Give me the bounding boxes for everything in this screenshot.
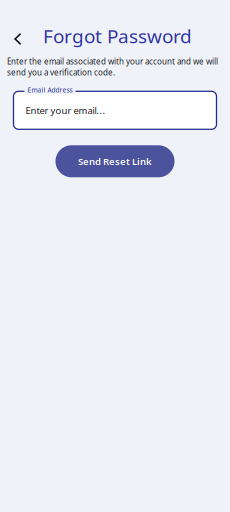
staticText: Forgot Password — [43, 23, 192, 49]
button[interactable]: Back — [7, 23, 29, 49]
staticText: Email Address — [27, 85, 72, 94]
staticText: Send Reset Link — [78, 155, 152, 168]
staticText: Enter the email associated with your acc… — [7, 56, 218, 78]
button[interactable]: Send Reset Link — [55, 145, 174, 177]
staticText: Enter your email... — [25, 104, 105, 117]
